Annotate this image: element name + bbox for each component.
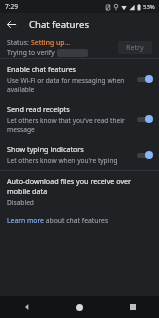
button[interactable]: Show typing indicators (0, 139, 159, 170)
staticText: Chat features (29, 18, 90, 31)
button[interactable]: Enable chat features (0, 59, 159, 99)
button[interactable]: Back (0, 296, 53, 318)
staticText: Retry (126, 43, 144, 53)
button[interactable]: Send read receipts (0, 99, 159, 139)
button[interactable]: Auto-download files you receive over mob… (0, 171, 159, 212)
button[interactable]: Toggle (134, 73, 154, 85)
staticText: Use Wi-Fi or data for messaging when ava… (7, 76, 130, 94)
staticText: Auto-download files you receive over mob… (7, 176, 152, 196)
staticText: about chat features (44, 216, 109, 225)
staticText: Send read receipts (7, 104, 70, 114)
staticText: Let others know when you're typing (7, 156, 118, 165)
button[interactable]: Toggle (134, 149, 154, 161)
staticText: Setting up… (31, 38, 70, 47)
staticText: Status: (7, 38, 31, 47)
staticText: 53% (143, 3, 155, 11)
staticText: Enable chat features (7, 64, 76, 74)
button[interactable]: Learn more (0, 212, 159, 229)
staticText: Disabled (7, 198, 34, 207)
button[interactable]: Home (53, 296, 106, 318)
button[interactable]: Recents (106, 296, 159, 318)
staticText: Learn more (7, 216, 44, 225)
staticText: Let others know that you've read their m… (7, 116, 130, 134)
button[interactable]: Back (0, 13, 23, 36)
staticText: 7:29 (5, 2, 18, 11)
button[interactable]: Toggle (134, 113, 154, 125)
staticText: Show typing indicators (7, 144, 84, 154)
button[interactable]: Retry (118, 41, 152, 54)
staticText: Trying to verify (7, 48, 57, 57)
